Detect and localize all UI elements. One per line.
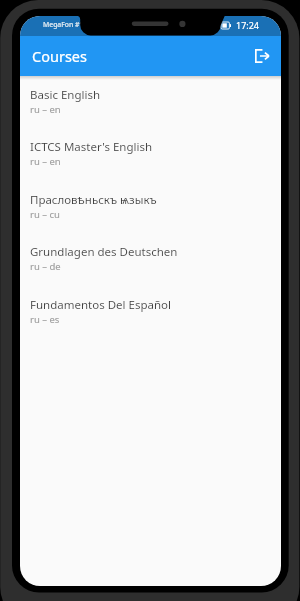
- button[interactable]: Basic English: [20, 80, 281, 132]
- button[interactable]: ICTCS Master's English: [20, 132, 281, 184]
- button[interactable]: Прасловѣньскъ ѩзыкъ: [20, 185, 281, 237]
- staticText: Fundamentos Del Español: [30, 297, 171, 313]
- button[interactable]: Grundlagen des Deutschen: [20, 237, 281, 289]
- staticText: Grundlagen des Deutschen: [30, 244, 178, 260]
- staticText: Courses: [32, 46, 87, 66]
- staticText: ru – cu: [30, 208, 60, 221]
- staticText: ru – es: [30, 313, 60, 326]
- button[interactable]: Log out: [245, 39, 279, 73]
- staticText: ru – en: [30, 155, 61, 168]
- staticText: ICTCS Master's English: [30, 139, 153, 155]
- staticText: MegaFon #1: [43, 20, 84, 29]
- staticText: 17:24: [236, 19, 260, 31]
- staticText: Прасловѣньскъ ѩзыкъ: [30, 192, 157, 208]
- staticText: ru – de: [30, 260, 61, 273]
- staticText: Basic English: [30, 87, 101, 103]
- staticText: ru – en: [30, 103, 61, 116]
- button[interactable]: Fundamentos Del Español: [20, 290, 281, 342]
